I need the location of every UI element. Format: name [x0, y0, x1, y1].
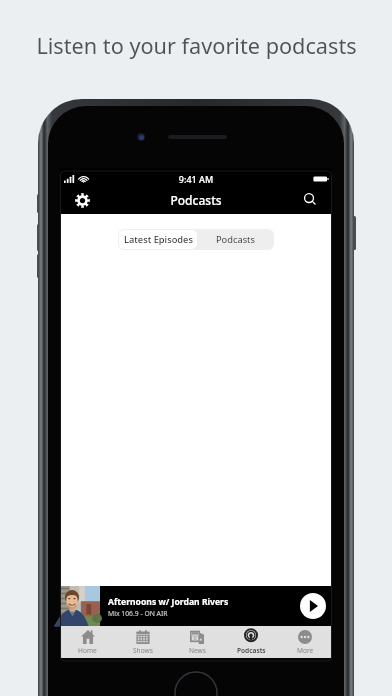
button[interactable]: Latest Episodes [119, 230, 197, 249]
button[interactable]: Podcasts [197, 230, 273, 249]
button[interactable]: Shows [115, 626, 170, 658]
staticText: Listen to your favorite podcasts [36, 31, 357, 61]
button[interactable]: More [278, 626, 332, 658]
staticText: More [297, 646, 314, 655]
staticText: 9:41 AM [60, 173, 332, 185]
staticText: News [189, 646, 206, 655]
button[interactable]: Podcasts [224, 626, 278, 658]
button[interactable]: Afternoons w/ Jordan Rivers [60, 586, 332, 626]
button[interactable]: Search [299, 188, 323, 212]
button[interactable]: News [170, 626, 224, 658]
button[interactable]: Settings [70, 188, 94, 212]
staticText: Podcasts [216, 233, 255, 246]
staticText: Podcasts [60, 192, 332, 208]
button[interactable]: Play [300, 593, 326, 619]
staticText: Podcasts [237, 646, 266, 655]
staticText: Afternoons w/ Jordan Rivers [108, 596, 229, 608]
button[interactable]: Home [60, 626, 115, 658]
staticText: Shows [133, 646, 153, 655]
staticText: Mix 106.9 - ON AIR [108, 609, 168, 618]
staticText: Latest Episodes [124, 233, 193, 246]
staticText: Home [78, 646, 97, 655]
